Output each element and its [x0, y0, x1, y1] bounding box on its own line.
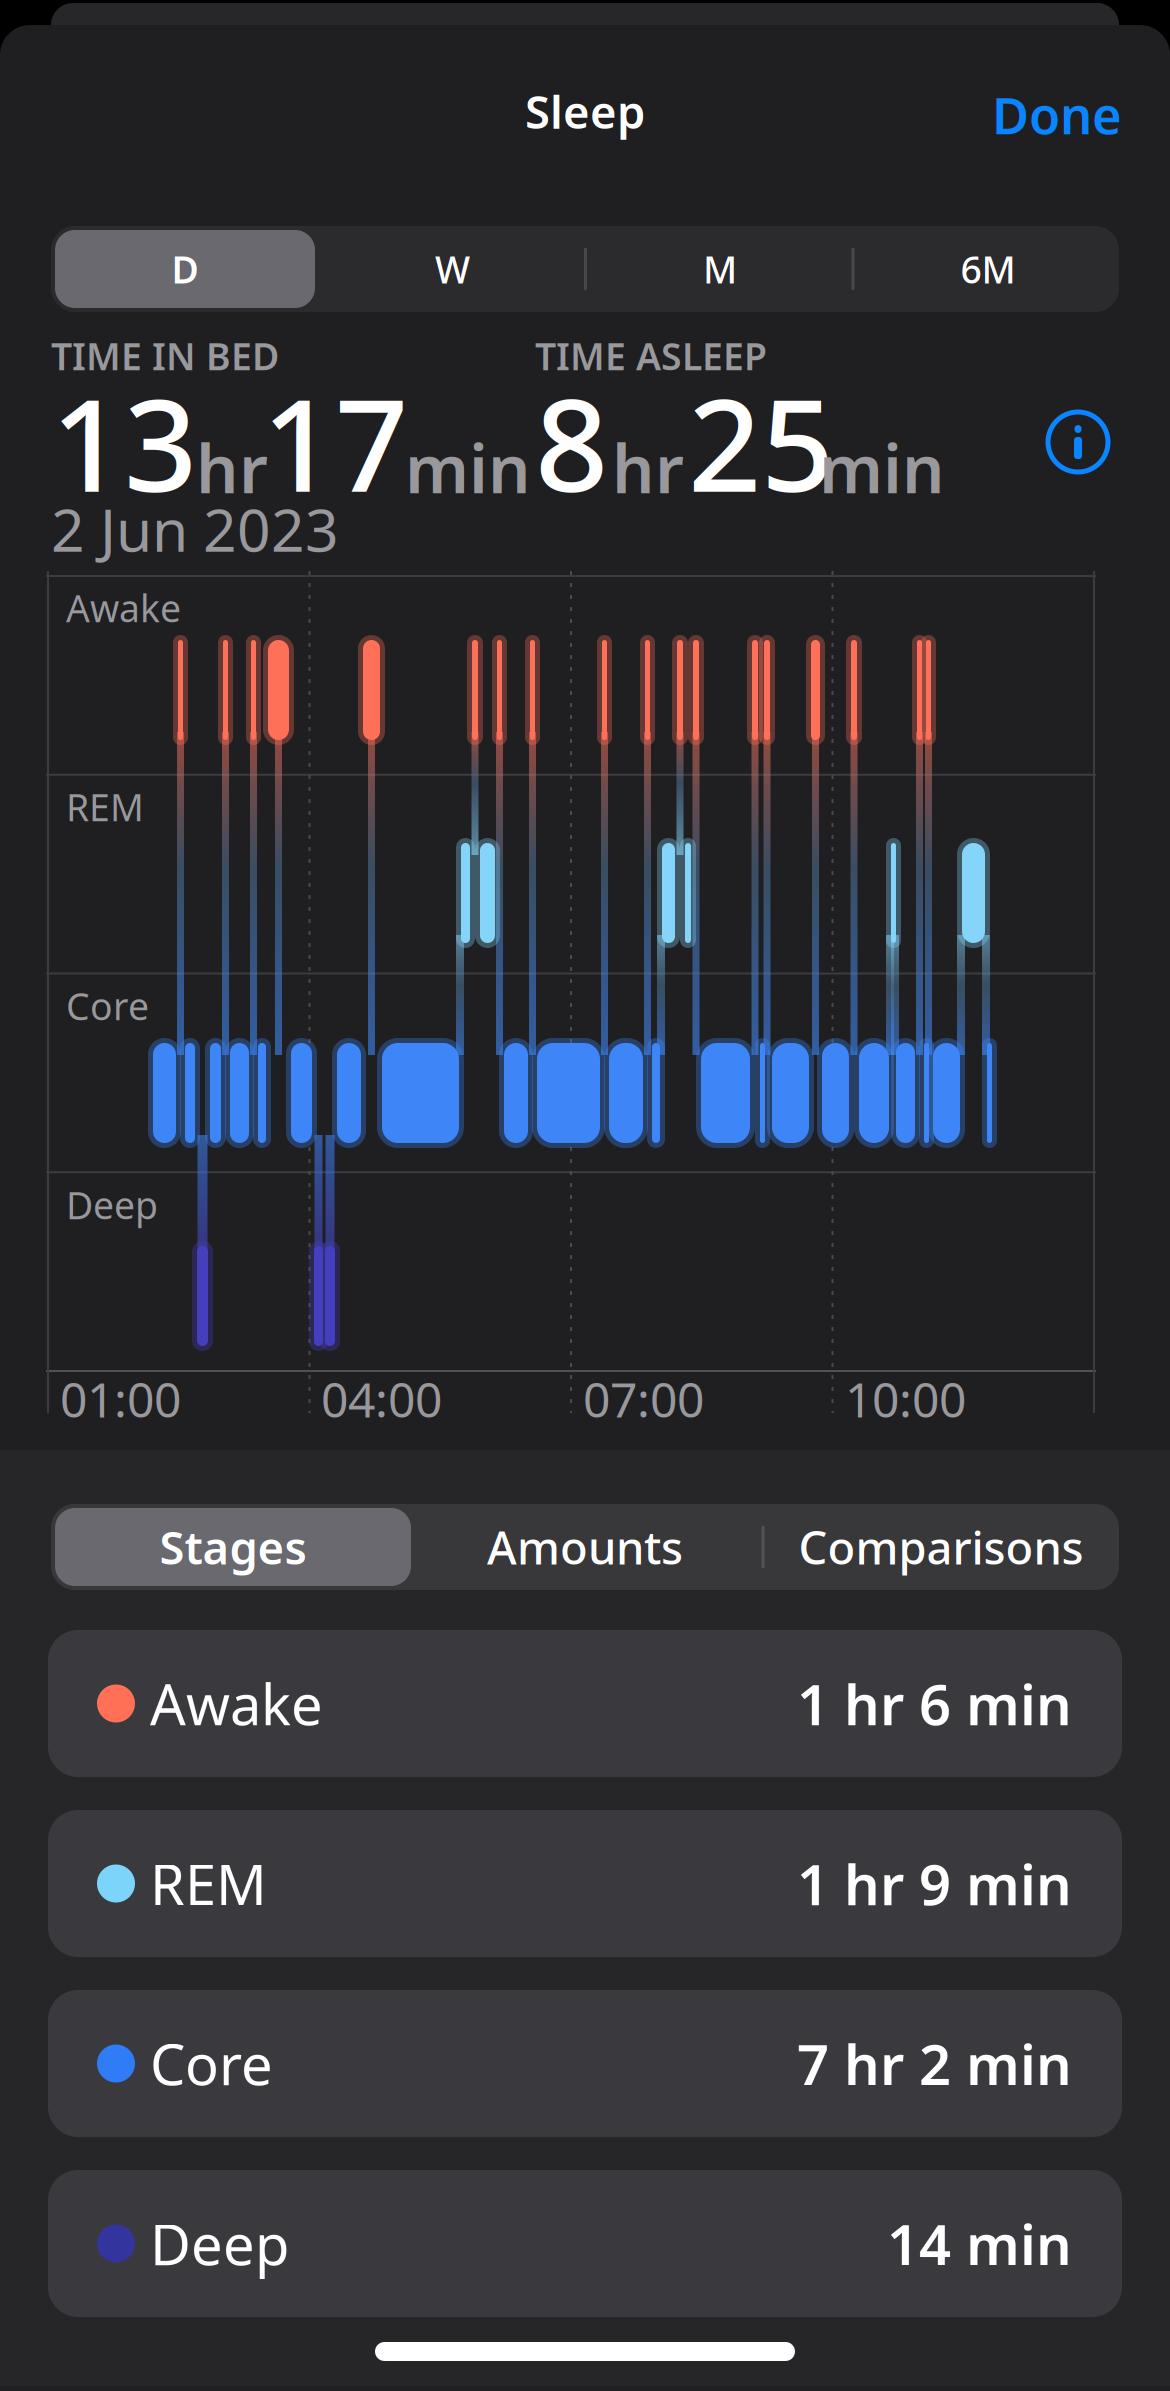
staticText: 1 hr 6 min — [797, 1666, 1072, 1741]
button[interactable]: Stages — [55, 1508, 411, 1586]
staticText: hr — [612, 423, 684, 511]
staticText: Stages — [159, 1517, 306, 1577]
staticText: 10:00 — [845, 1367, 966, 1431]
staticText: M — [703, 244, 737, 294]
staticText: 2 Jun 2023 — [51, 490, 339, 568]
staticText: 8 — [535, 357, 608, 527]
staticText: 13 — [51, 357, 197, 527]
button[interactable]: Done — [922, 81, 1122, 148]
staticText: 1 hr 9 min — [797, 1846, 1072, 1921]
button[interactable]: Awake — [48, 1630, 1122, 1777]
button[interactable]: Deep — [48, 2170, 1122, 2317]
button[interactable]: W — [323, 230, 583, 308]
staticText: 04:00 — [321, 1367, 442, 1431]
button[interactable]: Core — [48, 1990, 1122, 2137]
staticText: hr — [196, 423, 268, 511]
staticText: Amounts — [487, 1517, 683, 1577]
staticText: Comparisons — [798, 1517, 1083, 1577]
staticText: 14 min — [887, 2206, 1072, 2281]
button[interactable]: M — [590, 230, 850, 308]
staticText: Core — [150, 2026, 273, 2101]
button[interactable]: Comparisons — [767, 1508, 1115, 1586]
staticText: min — [819, 423, 945, 511]
staticText: Deep — [150, 2206, 289, 2281]
staticText: REM — [66, 782, 144, 832]
staticText: min — [405, 423, 531, 511]
staticText: TIME IN BED — [51, 331, 279, 381]
staticText: W — [435, 244, 470, 294]
staticText: Done — [992, 81, 1122, 148]
staticText: Deep — [66, 1180, 158, 1230]
staticText: 01:00 — [60, 1367, 181, 1431]
button[interactable]: Amounts — [411, 1508, 759, 1586]
button[interactable]: 6M — [858, 230, 1118, 308]
button[interactable] — [1048, 412, 1108, 472]
staticText: 07:00 — [583, 1367, 704, 1431]
staticText: Awake — [66, 583, 181, 633]
staticText: REM — [150, 1846, 267, 1921]
staticText: 17 — [262, 357, 408, 527]
staticText: D — [171, 244, 198, 294]
button[interactable]: REM — [48, 1810, 1122, 1957]
staticText: Sleep — [525, 81, 645, 141]
staticText: Awake — [150, 1666, 323, 1741]
button[interactable]: D — [55, 230, 315, 308]
staticText: 25 — [688, 357, 834, 527]
staticText: 6M — [960, 244, 1015, 294]
staticText: TIME ASLEEP — [535, 331, 767, 381]
staticText: Core — [66, 981, 149, 1031]
staticText: 7 hr 2 min — [797, 2026, 1072, 2101]
